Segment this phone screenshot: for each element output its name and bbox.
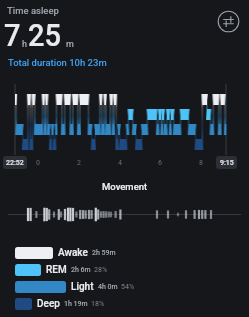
staticText: 2h 59m: [92, 249, 116, 257]
button[interactable]: 22:52: [3, 156, 27, 169]
button[interactable]: 9:15: [216, 156, 237, 169]
staticText: 7: [4, 16, 21, 53]
staticText: 18%: [91, 300, 105, 308]
staticText: 9:15: [220, 159, 234, 167]
staticText: 54%: [121, 283, 135, 291]
staticText: Deep: [37, 298, 60, 310]
staticText: Total duration 10h 23m: [8, 57, 107, 68]
button[interactable]: Awake: [15, 244, 116, 262]
button[interactable]: Light: [15, 278, 135, 296]
button[interactable]: Deep: [15, 295, 105, 313]
staticText: 2: [77, 159, 81, 167]
staticText: m: [66, 39, 74, 50]
staticText: Awake: [58, 247, 88, 259]
staticText: 8: [199, 159, 203, 167]
staticText: 4h 0m: [98, 283, 118, 291]
staticText: h: [22, 39, 28, 50]
staticText: Movement: [102, 181, 148, 192]
staticText: 0: [36, 159, 40, 167]
staticText: 6: [158, 159, 162, 167]
staticText: 25: [28, 16, 61, 53]
staticText: Time asleep: [7, 5, 59, 16]
staticText: REM: [46, 264, 67, 276]
staticText: 4: [118, 159, 122, 167]
staticText: Light: [71, 281, 94, 293]
button[interactable]: Adjust sleep settings: [217, 10, 240, 33]
staticText: 22:52: [6, 159, 24, 167]
staticText: 28%: [94, 266, 108, 274]
staticText: 1h 19m: [64, 300, 88, 308]
staticText: 2h 6m: [71, 266, 91, 274]
button[interactable]: REM: [15, 261, 108, 279]
